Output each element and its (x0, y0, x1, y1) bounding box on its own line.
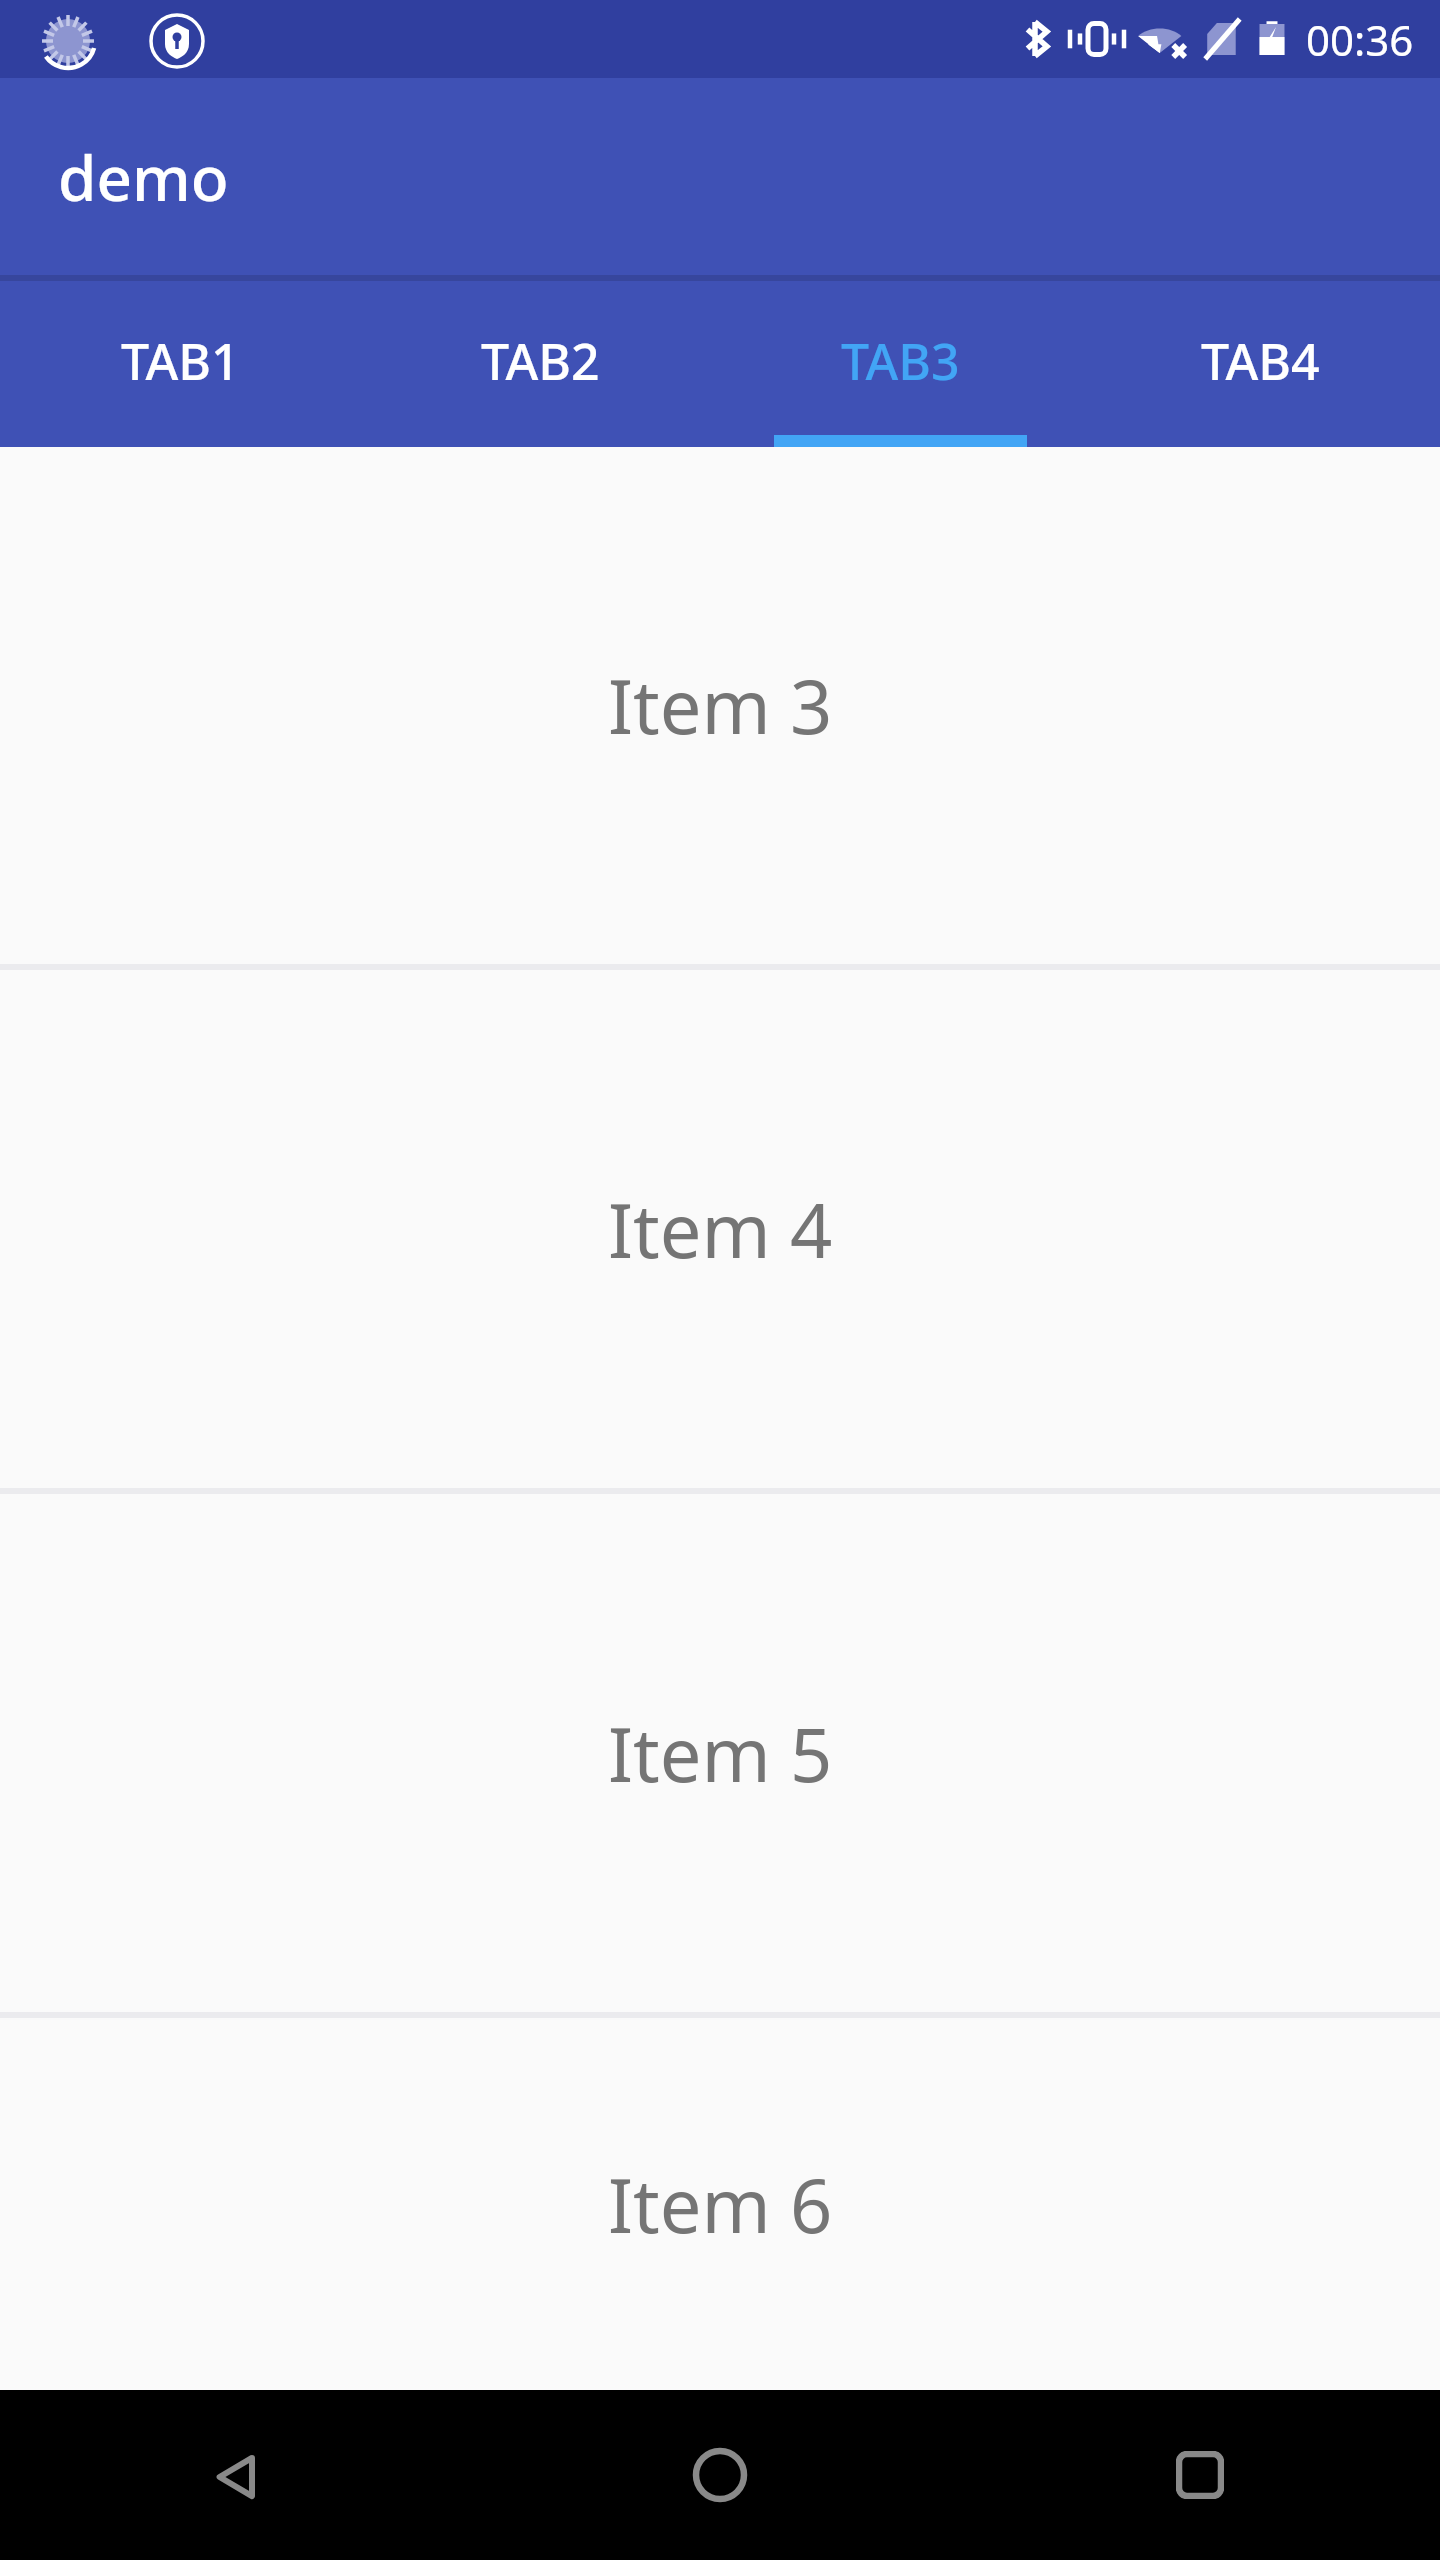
staticText: TAB1 (121, 327, 240, 395)
button[interactable]: Home (480, 2390, 960, 2560)
staticText: TAB4 (1201, 327, 1320, 395)
staticText: Item 5 (608, 1703, 833, 1804)
button[interactable]: Item 6 (0, 2018, 1440, 2390)
button[interactable]: Item 4 (0, 970, 1440, 1488)
button[interactable]: TAB3 (720, 275, 1080, 447)
button[interactable]: TAB1 (0, 275, 360, 447)
button[interactable]: Back (0, 2390, 480, 2560)
button[interactable]: Recent apps (960, 2390, 1440, 2560)
button[interactable]: Item 3 (0, 447, 1440, 964)
staticText: Item 6 (608, 2154, 833, 2255)
staticText: Item 4 (608, 1179, 833, 1280)
button[interactable]: TAB4 (1080, 275, 1440, 447)
staticText: TAB3 (841, 327, 960, 395)
staticText: demo (58, 135, 229, 219)
button[interactable]: Item 5 (0, 1494, 1440, 2012)
staticText: Item 3 (608, 655, 833, 756)
staticText: 00:36 (1306, 11, 1414, 68)
staticText: TAB2 (481, 327, 600, 395)
button[interactable]: TAB2 (360, 275, 720, 447)
